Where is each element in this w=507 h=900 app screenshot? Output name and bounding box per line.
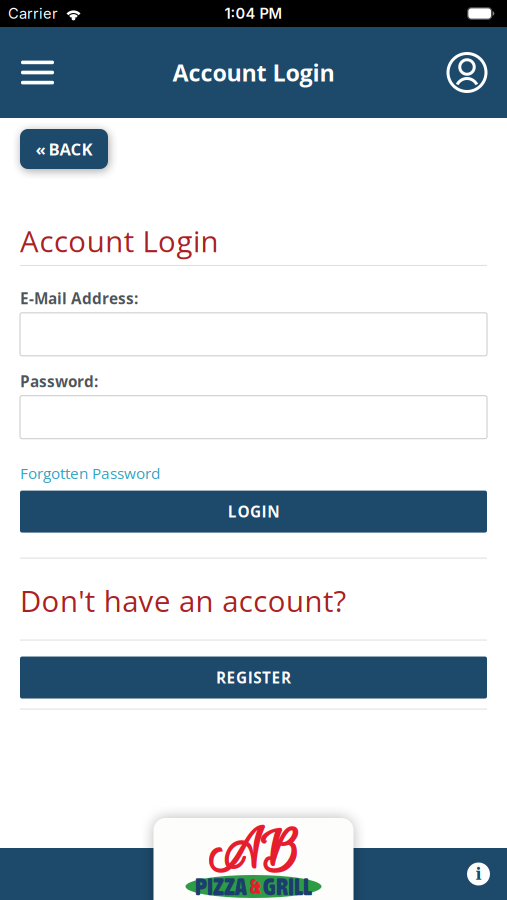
staticText: Carrier: [8, 5, 58, 22]
button[interactable]: Menu: [0, 51, 54, 94]
staticText: Password:: [20, 371, 98, 392]
staticText: Forgotten Password: [20, 463, 160, 484]
button[interactable]: Back: [20, 129, 108, 169]
staticText: Account Login: [20, 221, 218, 261]
staticText: BACK: [48, 138, 92, 160]
staticText: AB: [209, 817, 298, 888]
staticText: i: [475, 865, 481, 883]
staticText: 1:04 PM: [224, 5, 282, 22]
staticText: GRILL: [263, 873, 312, 900]
staticText: Don't have an account?: [20, 581, 346, 620]
staticText: «: [35, 138, 45, 160]
staticText: Account Login: [172, 57, 334, 88]
staticText: E-Mail Address:: [20, 288, 138, 309]
button[interactable]: Info: [467, 862, 507, 885]
staticText: PIZZA: [195, 873, 247, 900]
button[interactable]: LOGIN: [20, 491, 487, 533]
staticText: &: [250, 875, 260, 898]
button[interactable]: Forgotten Password: [20, 463, 160, 484]
button[interactable]: REGISTER: [20, 656, 487, 698]
button[interactable]: Account: [448, 47, 507, 97]
staticText: LOGIN: [228, 501, 279, 522]
staticText: REGISTER: [216, 667, 291, 688]
